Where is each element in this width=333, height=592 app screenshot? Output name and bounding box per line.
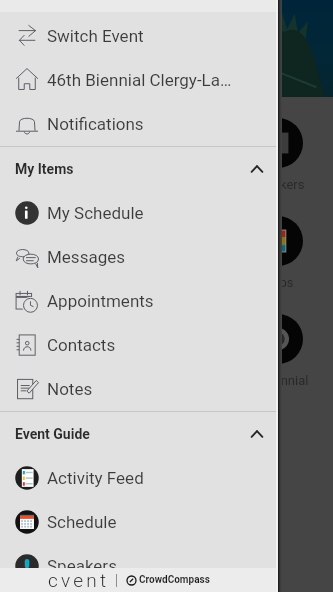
- staticText: Notes: [47, 379, 233, 399]
- staticText: CrowdCompass: [139, 574, 210, 586]
- button[interactable]: Notifications: [0, 102, 276, 146]
- button[interactable]: My Items: [0, 147, 276, 191]
- staticText: Event Guide: [15, 426, 90, 442]
- staticText: 46th Biennial Clergy-Lai…: [47, 70, 233, 90]
- button[interactable]: Activity Feed: [0, 456, 276, 500]
- button[interactable]: Messages: [0, 235, 276, 279]
- staticText: My Items: [15, 161, 74, 177]
- staticText: Appointments: [47, 291, 233, 311]
- button[interactable]: Event Guide: [0, 412, 276, 456]
- button[interactable]: Appointments: [0, 279, 276, 323]
- staticText: Speakers: [251, 177, 305, 192]
- staticText: My Event: [29, 373, 82, 388]
- staticText: Speakers: [47, 556, 233, 576]
- button[interactable]: Switch Event: [0, 14, 276, 58]
- button[interactable]: Contacts: [0, 323, 276, 367]
- staticText: cvent: [48, 569, 110, 591]
- button[interactable]: Schedule: [0, 500, 276, 544]
- button[interactable]: Notes: [0, 367, 276, 411]
- button[interactable]: My Schedule: [0, 191, 276, 235]
- staticText: Maps: [261, 275, 294, 290]
- staticText: My Schedule: [47, 203, 233, 223]
- button[interactable]: 46th Biennial Clergy-Lai…: [0, 58, 276, 102]
- staticText: Schedule: [47, 512, 233, 532]
- staticText: Messages: [47, 247, 233, 267]
- staticText: Switch Event: [47, 26, 233, 46]
- staticText: Contacts: [47, 335, 233, 355]
- staticText: Activity Feed: [47, 468, 233, 488]
- staticText: Notifications: [47, 114, 233, 134]
- button[interactable]: Speakers: [0, 544, 276, 588]
- staticText: Centennial: [247, 373, 309, 388]
